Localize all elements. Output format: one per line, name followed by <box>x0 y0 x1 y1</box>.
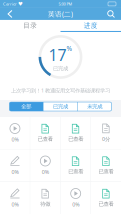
button[interactable]: 0% <box>0 182 30 214</box>
button[interactable]: 已查看 <box>30 117 60 149</box>
staticText: 0分 <box>102 135 110 143</box>
button[interactable]: 已完成 <box>44 102 77 111</box>
button[interactable]: 进度 <box>60 20 121 32</box>
staticText: 已查看 <box>99 201 114 207</box>
button[interactable]: 0分 <box>91 117 121 149</box>
button[interactable]: 待做 <box>30 182 60 214</box>
button[interactable]: 已查看 <box>61 149 91 181</box>
button[interactable]: 目录 <box>0 20 60 32</box>
staticText: Carrier <box>3 1 17 7</box>
button[interactable]: 已查看 <box>91 182 121 214</box>
staticText: 进度 <box>84 21 98 30</box>
staticText: 目录 <box>23 21 37 30</box>
staticText: 未完成 <box>87 103 102 110</box>
staticText: 待做 <box>40 201 50 207</box>
staticText: 已查看 <box>99 168 114 175</box>
button[interactable]: 0% <box>0 149 30 181</box>
button[interactable]: 0% <box>30 149 60 181</box>
button[interactable]: 0% <box>0 117 30 149</box>
button[interactable]: 已查看 <box>91 149 121 181</box>
staticText: 全部 <box>21 103 31 110</box>
staticText: 0% <box>11 136 18 143</box>
staticText: 0% <box>72 201 79 208</box>
staticText: 已查看 <box>68 136 83 142</box>
button[interactable]: Search <box>103 8 119 19</box>
staticText: % <box>66 44 72 53</box>
staticText: 0% <box>11 201 18 208</box>
button[interactable]: 0% <box>61 182 91 214</box>
button[interactable]: 全部 <box>9 102 43 111</box>
staticText: 已完成 <box>53 65 68 72</box>
staticText: ♥ <box>18 1 23 7</box>
staticText: 上次学习到！1 教通应用文写作基础课程学习 <box>11 87 110 94</box>
staticText: 已查看 <box>38 136 53 142</box>
button[interactable]: Back <box>2 8 18 19</box>
staticText: 0% <box>42 168 49 176</box>
staticText: 已完成 <box>53 103 68 110</box>
button[interactable]: 未完成 <box>78 102 111 111</box>
staticText: 5:00 PM <box>58 1 72 7</box>
staticText: 英语(二) <box>48 9 73 18</box>
staticText: 0% <box>11 168 18 176</box>
staticText: 17 <box>48 44 66 65</box>
staticText: 已查看 <box>68 168 83 175</box>
button[interactable]: 已查看 <box>61 117 91 149</box>
